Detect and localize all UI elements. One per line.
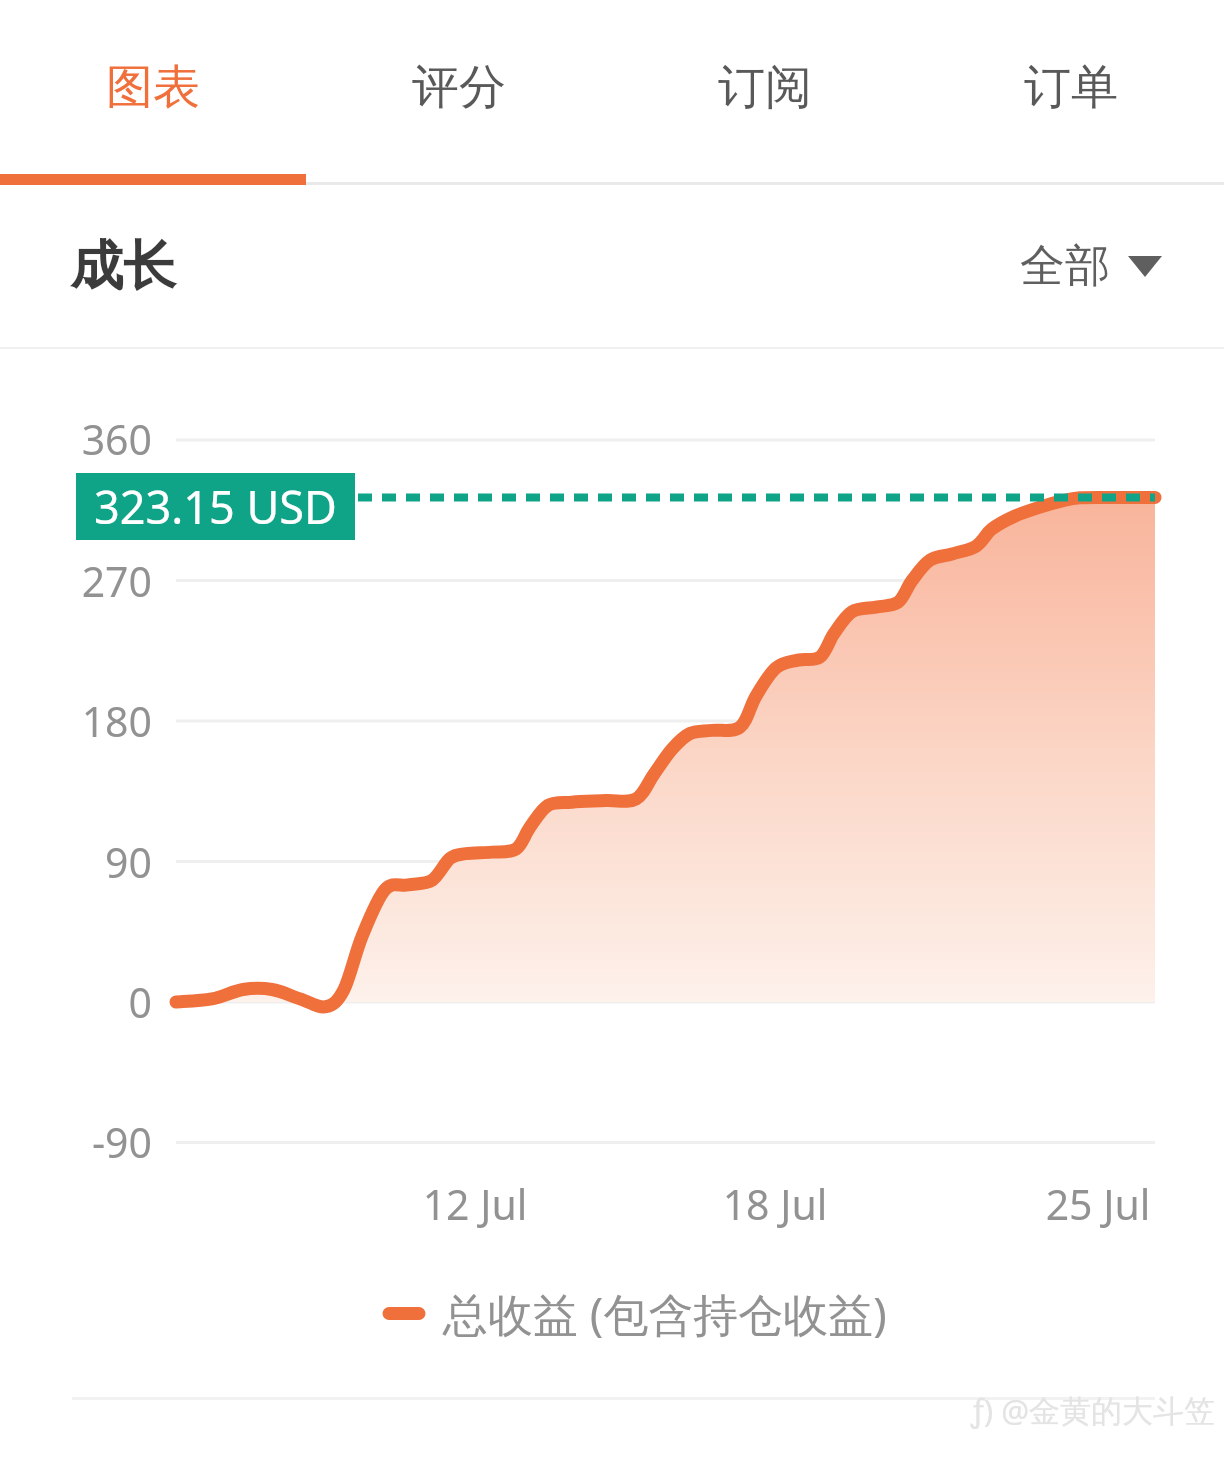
staticText: 12 Jul xyxy=(385,1176,565,1232)
staticText: 订阅 xyxy=(718,58,812,117)
button[interactable]: 订单 xyxy=(918,0,1224,174)
button[interactable]: 总收益 (包含持仓收益) xyxy=(383,1283,887,1344)
staticText: ƒ) @金黄的大斗笠 xyxy=(971,1389,1216,1431)
staticText: 订单 xyxy=(1024,58,1118,117)
staticText: 270 xyxy=(2,553,152,609)
staticText: 25 Jul xyxy=(1008,1176,1188,1232)
other: Select range xyxy=(1128,256,1162,277)
staticText: 90 xyxy=(2,834,152,890)
staticText: -90 xyxy=(2,1114,152,1170)
staticText: 180 xyxy=(2,693,152,749)
staticText: 评分 xyxy=(412,58,506,117)
button[interactable]: 323.15 USD xyxy=(94,476,337,537)
button[interactable]: 图表 xyxy=(0,0,306,174)
staticText: 0 xyxy=(2,974,152,1030)
staticText: 18 Jul xyxy=(685,1176,865,1232)
button[interactable]: 订阅 xyxy=(612,0,918,174)
staticText: 全部 xyxy=(1020,238,1110,295)
button[interactable]: 评分 xyxy=(306,0,612,174)
button[interactable]: 全部 xyxy=(1020,238,1162,295)
staticText: 成长 xyxy=(70,233,176,300)
staticText: 总收益 (包含持仓收益) xyxy=(443,1283,887,1344)
staticText: 323.15 USD xyxy=(94,476,337,537)
staticText: 360 xyxy=(2,411,152,467)
staticText: 图表 xyxy=(106,58,200,117)
